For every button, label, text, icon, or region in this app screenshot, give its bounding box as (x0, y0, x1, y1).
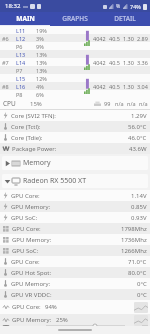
staticText: GPU Core: (12, 303, 41, 311)
staticText: GPU Hot Spot: (11, 269, 52, 277)
button[interactable]: GPU Core: (0, 256, 150, 267)
staticText: 19% (36, 27, 47, 34)
staticText: 0.85V (131, 203, 147, 211)
button[interactable]: L13 (0, 50, 150, 74)
staticText: 1.29V (131, 112, 147, 120)
staticText: L12 (16, 35, 26, 42)
button[interactable]: GPU SoC: (0, 212, 150, 223)
staticText: Package Power: (12, 145, 57, 153)
staticText: 40.5 (109, 35, 120, 42)
staticText: 13% (36, 51, 47, 58)
staticText: 18:32 (5, 2, 21, 10)
staticText: 56.0°C (128, 123, 147, 131)
staticText: 13% (36, 67, 47, 74)
button[interactable]: Collapse (2, 174, 148, 188)
staticText: GPU Memory: (12, 236, 52, 244)
button[interactable]: L11 (0, 26, 150, 50)
staticText: L15 (16, 75, 26, 82)
button[interactable]: Package Power: (0, 143, 150, 154)
staticText: 0.93V (131, 214, 147, 222)
staticText: Radeon RX 5500 XT (23, 176, 87, 186)
staticText: 3% (36, 35, 44, 42)
other: Home (58, 329, 92, 331)
staticText: n/a (127, 100, 136, 107)
staticText: L16 (16, 83, 26, 90)
staticText: P7 (16, 67, 23, 74)
button[interactable]: GPU Memory: (0, 234, 150, 245)
staticText: n/a (115, 100, 124, 107)
staticText: 99 (104, 100, 111, 107)
staticText: CPU (3, 99, 16, 108)
staticText: GPU Memory: (12, 316, 52, 324)
staticText: 4% (36, 83, 44, 90)
button[interactable]: GPU Memory: (0, 314, 150, 326)
staticText: MAIN (16, 14, 35, 23)
staticText: Core (Tdie): (11, 134, 43, 142)
staticText: 4042 (93, 83, 106, 90)
staticText: 4042 (93, 35, 106, 42)
staticText: GPU VR VDDC: (11, 291, 52, 299)
staticText: 13% (36, 59, 47, 66)
button[interactable]: DETAIL (100, 12, 150, 25)
button[interactable]: MAIN (0, 12, 50, 25)
button[interactable]: GPU Memory: (0, 201, 150, 212)
staticText: 43.6W (129, 145, 147, 153)
button[interactable]: GPU SoC: (0, 245, 150, 256)
staticText: 3.04 (137, 83, 148, 90)
staticText: 0°C (137, 280, 147, 288)
staticText: 15% (30, 100, 42, 108)
staticText: 80.0°C (128, 269, 147, 277)
staticText: 46.0°C (128, 134, 147, 142)
staticText: 1736Mhz (121, 236, 147, 244)
staticText: Core (SVI2 TFN): (11, 112, 56, 120)
staticText: 1.30 (123, 83, 134, 90)
staticText: GPU Memory: (11, 280, 51, 288)
staticText: GRAPHS (62, 14, 88, 23)
button[interactable]: Core (Tctl): (0, 121, 150, 132)
staticText: GPU Core: (12, 225, 41, 233)
staticText: 3.36 (137, 59, 148, 66)
staticText: DETAIL (114, 14, 136, 23)
button[interactable]: GPU Core: (0, 190, 150, 201)
staticText: P6 (16, 43, 23, 50)
button[interactable]: Expand (2, 156, 148, 170)
staticText: 1.14V (131, 192, 147, 200)
staticText: L14 (16, 59, 26, 66)
staticText: 74% (130, 3, 141, 10)
button[interactable]: Core (SVI2 TFN): (0, 110, 150, 121)
other: Collapse (4, 178, 11, 185)
staticText: % (116, 3, 121, 10)
staticText: 94% (45, 303, 57, 311)
button[interactable]: GPU VR VDDC: (0, 289, 150, 300)
staticText: 71.0°C (128, 258, 147, 266)
staticText: 0°C (137, 291, 147, 299)
staticText: P8 (16, 91, 23, 98)
button[interactable]: GPU Hot Spot: (0, 267, 150, 278)
staticText: 25% (56, 316, 68, 324)
staticText: L13 (16, 51, 26, 58)
staticText: GPU Core: (11, 192, 40, 200)
staticText: #7 (2, 59, 9, 66)
staticText: 9% (36, 43, 44, 50)
staticText: 40.5 (109, 83, 120, 90)
staticText: 1798Mhz (121, 225, 147, 233)
staticText: 1266Mhz (121, 247, 147, 255)
button[interactable]: CPU (0, 98, 150, 109)
staticText: n/a (139, 100, 148, 107)
staticText: 12% (36, 75, 47, 82)
staticText: 2.89 (137, 35, 148, 42)
staticText: GPU Core: (11, 258, 40, 266)
button[interactable]: GPU Core: (0, 223, 150, 234)
button[interactable]: GRAPHS (50, 12, 100, 25)
staticText: 1.30 (123, 35, 134, 42)
staticText: GPU Memory: (11, 203, 51, 211)
staticText: Core (Tctl): (11, 123, 41, 131)
other: Expand (4, 160, 11, 167)
staticText: #6 (2, 35, 9, 42)
button[interactable]: GPU Core: (0, 300, 150, 314)
button[interactable]: GPU Memory: (0, 278, 150, 289)
button[interactable]: Core (Tdie): (0, 132, 150, 143)
button[interactable]: L15 (0, 74, 150, 98)
staticText: 40.5 (109, 59, 120, 66)
staticText: 6% (36, 91, 44, 98)
